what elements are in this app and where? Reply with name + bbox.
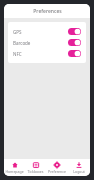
button[interactable]: Toggle on xyxy=(68,28,81,35)
button[interactable]: Toggle on xyxy=(68,50,81,57)
button[interactable]: Barcode xyxy=(8,37,86,48)
staticText: Preferences xyxy=(33,8,62,15)
button[interactable]: Preference xyxy=(46,159,68,176)
staticText: Homepage xyxy=(5,169,24,174)
staticText: GPS xyxy=(13,29,68,35)
staticText: Preference xyxy=(48,169,66,174)
button[interactable]: Toggle on xyxy=(68,39,81,46)
button[interactable]: Logout xyxy=(68,159,90,176)
button[interactable]: Tickboxes xyxy=(25,159,46,176)
button[interactable]: NFC xyxy=(8,48,86,59)
staticText: Barcode xyxy=(13,40,68,46)
button[interactable]: GPS xyxy=(8,26,86,37)
staticText: Tickboxes xyxy=(27,169,44,174)
button[interactable]: Homepage xyxy=(4,159,25,176)
staticText: NFC xyxy=(13,51,68,57)
staticText: Logout xyxy=(73,169,85,174)
